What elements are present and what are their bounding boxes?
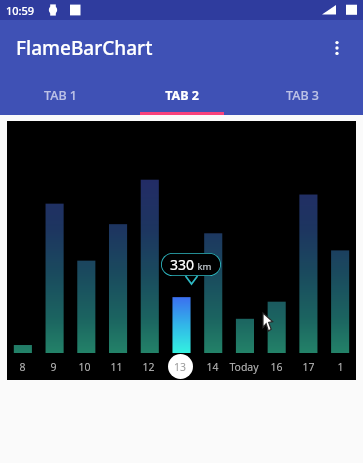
- staticText: 9: [50, 360, 57, 374]
- button[interactable]: 11: [100, 353, 132, 380]
- staticText: 17: [302, 360, 315, 374]
- button[interactable]: TAB 3: [242, 75, 363, 115]
- button[interactable]: 16: [260, 353, 292, 380]
- button[interactable]: 14: [196, 353, 228, 380]
- staticText: TAB 1: [44, 87, 77, 104]
- staticText: 11: [110, 360, 123, 374]
- button[interactable]: 8: [7, 353, 38, 380]
- staticText: 10: [78, 360, 91, 374]
- button[interactable]: 8: [7, 121, 356, 380]
- button[interactable]: Today: [228, 353, 260, 380]
- button[interactable]: 13: [164, 353, 196, 380]
- staticText: Today: [229, 360, 259, 374]
- staticText: 14: [206, 360, 219, 374]
- staticText: 330: [170, 255, 195, 274]
- staticText: TAB 2: [165, 87, 199, 104]
- button[interactable]: TAB 1: [0, 75, 121, 115]
- button[interactable]: 10: [69, 353, 100, 380]
- staticText: 1: [337, 360, 344, 374]
- staticText: km: [195, 260, 212, 273]
- button[interactable]: More options: [314, 25, 360, 71]
- button[interactable]: 1: [324, 353, 356, 380]
- staticText: 10:59: [6, 3, 35, 18]
- button[interactable]: 17: [292, 353, 324, 380]
- button[interactable]: 9: [38, 353, 69, 380]
- staticText: 12: [142, 360, 155, 374]
- staticText: 13: [174, 360, 187, 374]
- staticText: 16: [270, 360, 283, 374]
- button[interactable]: 12: [132, 353, 164, 380]
- staticText: TAB 3: [286, 87, 319, 104]
- staticText: FlameBarChart: [16, 35, 153, 61]
- staticText: 8: [19, 360, 26, 374]
- button[interactable]: TAB 2: [121, 75, 242, 115]
